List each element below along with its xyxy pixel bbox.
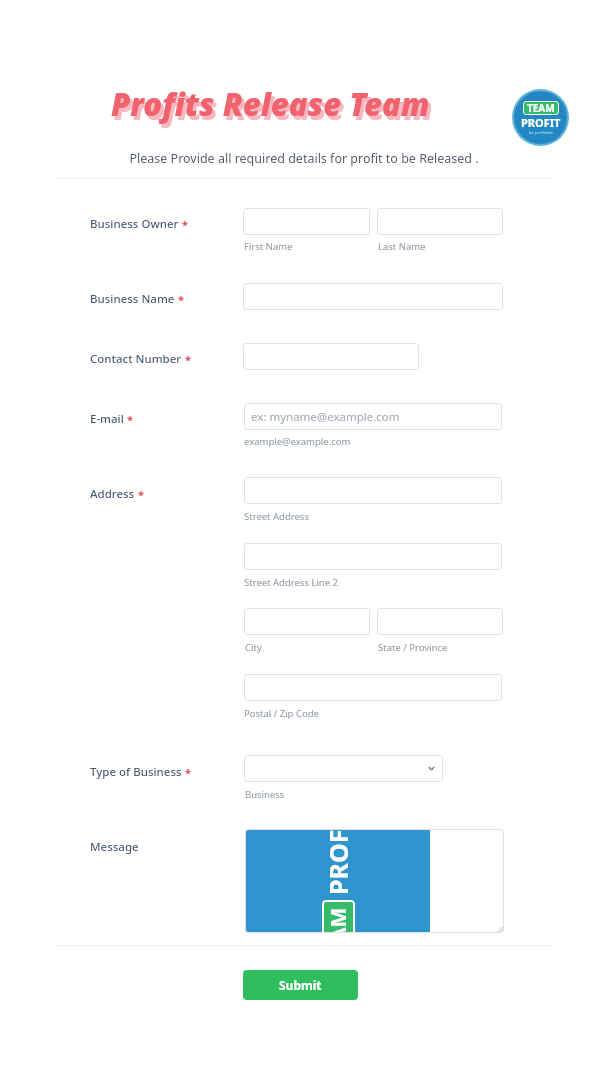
staticText: Address bbox=[90, 486, 135, 502]
staticText: Postal / Zip Code bbox=[244, 707, 319, 720]
button[interactable] bbox=[377, 208, 503, 235]
staticText: Please Provide all required details for … bbox=[129, 150, 479, 167]
button[interactable] bbox=[243, 343, 419, 370]
staticText: Profits Release Team bbox=[114, 87, 433, 129]
button[interactable]: Submit bbox=[243, 970, 358, 1000]
staticText: Last Name bbox=[378, 240, 426, 253]
button[interactable] bbox=[244, 608, 370, 635]
button[interactable] bbox=[244, 543, 502, 570]
staticText: * bbox=[182, 217, 188, 232]
staticText: * bbox=[185, 765, 191, 780]
button[interactable] bbox=[244, 477, 502, 504]
staticText: Contact Number bbox=[90, 351, 182, 367]
staticText: * bbox=[178, 292, 184, 307]
staticText: * bbox=[127, 412, 133, 427]
staticText: PROFIT bbox=[521, 115, 561, 130]
staticText: Profits Release Team bbox=[111, 83, 430, 125]
staticText: ex: myname@example.com bbox=[251, 409, 400, 425]
staticText: Business bbox=[245, 788, 285, 801]
staticText: First Name bbox=[244, 240, 293, 253]
staticText: TEAM bbox=[527, 101, 555, 115]
button[interactable] bbox=[244, 755, 443, 782]
staticText: Type of Business bbox=[90, 764, 182, 780]
staticText: Submit bbox=[279, 977, 322, 993]
button[interactable]: ex: myname@example.com bbox=[244, 403, 502, 430]
staticText: be profitable bbox=[529, 130, 554, 135]
staticText: * bbox=[185, 352, 191, 367]
staticText: * bbox=[138, 487, 144, 502]
staticText: City bbox=[245, 641, 262, 654]
staticText: Street Address bbox=[244, 510, 309, 523]
staticText: PROFIT bbox=[321, 829, 355, 895]
staticText: State / Province bbox=[378, 641, 448, 654]
staticText: Message bbox=[90, 839, 139, 855]
staticText: E-mail bbox=[90, 411, 124, 427]
staticText: TEAM bbox=[324, 907, 353, 933]
staticText: Business Owner bbox=[90, 216, 179, 232]
button[interactable]: TEAM bbox=[245, 829, 504, 933]
button[interactable] bbox=[377, 608, 503, 635]
button[interactable] bbox=[244, 674, 502, 701]
button[interactable] bbox=[243, 208, 370, 235]
staticText: Business Name bbox=[90, 291, 175, 307]
button[interactable] bbox=[243, 283, 503, 310]
staticText: Street Address Line 2 bbox=[244, 576, 338, 589]
staticText: example@example.com bbox=[244, 435, 351, 448]
